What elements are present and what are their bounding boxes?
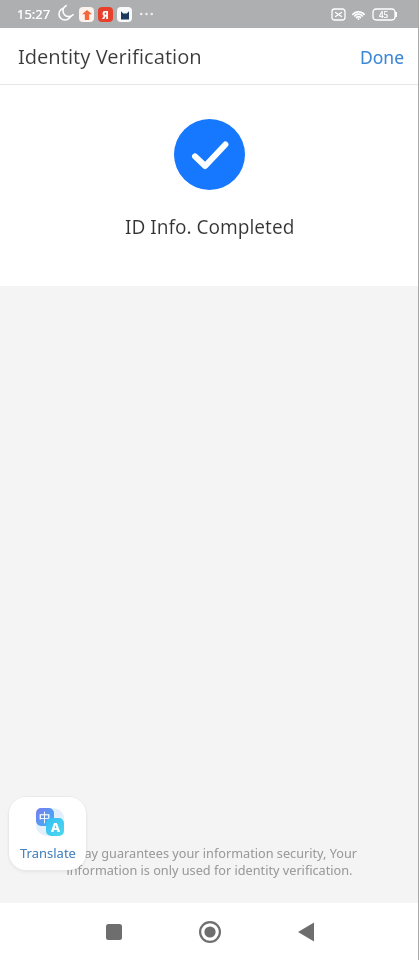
button[interactable]: Done [355,39,410,75]
button[interactable]: Recents [86,904,142,960]
staticText: Translate [20,844,76,862]
staticText: 45 [379,9,389,20]
staticText: 中 [39,810,51,825]
staticText: Я [102,8,109,22]
staticText: Identity Verification [18,43,202,70]
staticText: 15:27 [17,5,51,23]
button[interactable]: Home [182,904,238,960]
staticText: Done [360,45,405,69]
staticText: Alipay guarantees your information secur… [40,844,379,878]
button[interactable]: 中 [9,797,86,870]
button[interactable]: Back [278,904,334,960]
staticText: ID Info. Completed [125,214,295,240]
staticText: A [51,818,60,836]
